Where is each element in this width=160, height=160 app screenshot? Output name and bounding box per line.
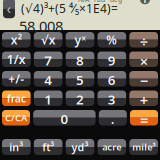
staticText: deg <box>110 0 122 4</box>
button[interactable]: 2 <box>66 90 94 106</box>
button[interactable]: − <box>129 71 158 86</box>
staticText: 2 <box>76 90 84 106</box>
button[interactable]: frac <box>2 90 31 106</box>
staticText: . <box>111 110 115 125</box>
button[interactable]: = <box>130 110 158 125</box>
staticText: C/CA <box>5 112 27 124</box>
staticText: acre <box>102 141 121 153</box>
staticText: 9 <box>108 51 116 67</box>
button[interactable]: 0 <box>33 110 96 125</box>
staticText: +/- <box>8 71 24 86</box>
staticText: i <box>143 0 146 5</box>
button[interactable]: acre <box>97 139 126 155</box>
staticText: 0 <box>60 110 68 125</box>
button[interactable]: +/- <box>2 71 31 86</box>
staticText: yd³ <box>71 140 88 154</box>
button[interactable]: % <box>97 32 126 47</box>
staticText: 8 <box>76 51 84 67</box>
staticText: 3 <box>108 90 116 106</box>
staticText: − <box>140 71 148 86</box>
button[interactable]: x² <box>2 32 31 47</box>
button[interactable]: 3 <box>97 90 126 106</box>
staticText: frac <box>7 91 26 105</box>
button[interactable]: √x <box>34 32 62 47</box>
staticText: 5 <box>76 71 84 86</box>
button[interactable]: 5 <box>66 71 94 86</box>
button[interactable]: 4 <box>34 71 62 86</box>
button[interactable]: Info <box>140 0 150 4</box>
button[interactable]: mile³ <box>129 139 158 155</box>
staticText: 1/x <box>7 51 26 67</box>
button[interactable]: ft³ <box>34 139 62 155</box>
button[interactable]: × <box>129 51 158 67</box>
staticText: 58,008 <box>19 16 63 36</box>
staticText: × <box>140 51 148 67</box>
button[interactable]: + <box>129 90 158 106</box>
staticText: (√4)³+(5 ⁴⁄₅×1E4)= <box>21 0 118 16</box>
button[interactable]: 8 <box>66 51 94 67</box>
staticText: √x <box>41 32 56 47</box>
staticText: 6 <box>108 71 116 86</box>
staticText: x² <box>11 32 22 47</box>
staticText: % <box>106 32 117 47</box>
staticText: = <box>140 110 148 125</box>
staticText: mile³ <box>132 141 155 153</box>
button[interactable]: 6 <box>97 71 126 86</box>
button[interactable]: 9 <box>97 51 126 67</box>
button[interactable]: ÷ <box>129 32 158 47</box>
button[interactable]: 1/x <box>2 51 31 67</box>
staticText: 1 <box>44 90 52 106</box>
button[interactable]: 7 <box>34 51 62 67</box>
button[interactable]: 1 <box>34 90 62 106</box>
staticText: 4 <box>44 71 52 86</box>
staticText: + <box>140 90 148 106</box>
button[interactable]: Previous entry <box>3 0 15 18</box>
staticText: ft³ <box>42 140 54 154</box>
button[interactable]: yd³ <box>66 139 94 155</box>
button[interactable]: in³ <box>2 139 31 155</box>
staticText: 7 <box>44 51 52 67</box>
staticText: yˣ <box>74 32 85 47</box>
button[interactable]: . <box>99 110 127 125</box>
button[interactable]: C/CA <box>2 110 30 125</box>
button[interactable]: yˣ <box>66 32 94 47</box>
staticText: ‹ <box>6 0 11 18</box>
staticText: ÷ <box>140 32 148 47</box>
staticText: in³ <box>9 140 23 154</box>
staticText: N/A <box>78 0 89 4</box>
staticText: rad <box>94 0 105 4</box>
